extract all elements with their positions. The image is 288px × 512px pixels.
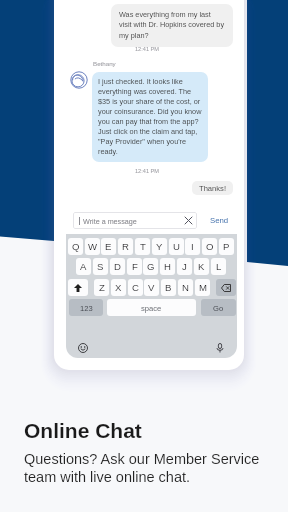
staticText: X: [115, 282, 122, 293]
staticText: T: [140, 241, 146, 252]
staticText: W: [88, 241, 98, 252]
button[interactable]: P: [219, 238, 234, 255]
button[interactable]: S: [93, 258, 108, 275]
staticText: O: [206, 241, 214, 252]
staticText: Go: [213, 304, 224, 312]
staticText: space: [141, 304, 162, 312]
staticText: Thanks!: [199, 184, 227, 192]
button[interactable]: Q: [68, 238, 83, 255]
button[interactable]: H: [160, 258, 175, 275]
staticText: Z: [99, 282, 105, 293]
staticText: I just checked. It looks like everything…: [98, 77, 202, 156]
button[interactable]: R: [118, 238, 133, 255]
staticText: A: [80, 261, 87, 272]
button[interactable]: Emoji keyboard: [76, 341, 90, 355]
button[interactable]: Z: [94, 279, 109, 296]
button[interactable]: Y: [152, 238, 167, 255]
button[interactable]: Backspace: [216, 279, 236, 296]
staticText: 123: [80, 304, 93, 312]
staticText: Bethany: [93, 60, 116, 67]
button[interactable]: Clear message: [180, 212, 197, 229]
staticText: B: [165, 282, 172, 293]
button[interactable]: U: [169, 238, 184, 255]
button[interactable]: Was everything from my last visit with D…: [111, 4, 233, 47]
staticText: K: [198, 261, 205, 272]
staticText: L: [216, 261, 222, 272]
staticText: 12:41 PM: [135, 168, 159, 174]
button[interactable]: Voice input: [213, 341, 227, 355]
button[interactable]: Go: [201, 299, 236, 316]
button[interactable]: W: [85, 238, 100, 255]
staticText: Online Chat: [24, 419, 142, 442]
staticText: Q: [72, 241, 80, 252]
staticText: R: [122, 241, 129, 252]
button[interactable]: M: [195, 279, 210, 296]
staticText: H: [164, 261, 171, 272]
button[interactable]: T: [135, 238, 150, 255]
staticText: Y: [156, 241, 163, 252]
staticText: D: [114, 261, 121, 272]
staticText: I: [191, 241, 194, 252]
button[interactable]: X: [111, 279, 126, 296]
button[interactable]: I just checked. It looks like everything…: [92, 72, 208, 162]
button[interactable]: B: [161, 279, 176, 296]
button[interactable]: A: [76, 258, 91, 275]
button[interactable]: L: [211, 258, 226, 275]
staticText: S: [97, 261, 104, 272]
button[interactable]: O: [202, 238, 217, 255]
staticText: 12:41 PM: [135, 46, 159, 52]
button[interactable]: N: [178, 279, 193, 296]
staticText: Questions? Ask our Member Service team w…: [24, 451, 260, 485]
button[interactable]: E: [101, 238, 116, 255]
button[interactable]: Shift: [68, 279, 88, 296]
button[interactable]: D: [110, 258, 125, 275]
staticText: Send: [210, 216, 229, 225]
button[interactable]: G: [143, 258, 158, 275]
staticText: E: [105, 241, 112, 252]
staticText: M: [199, 282, 207, 293]
staticText: C: [132, 282, 139, 293]
button[interactable]: V: [144, 279, 159, 296]
button[interactable]: I: [185, 238, 200, 255]
button[interactable]: Send: [208, 212, 231, 229]
staticText: U: [173, 241, 180, 252]
button[interactable]: Write a message: [73, 212, 197, 229]
button[interactable]: 123: [69, 299, 103, 316]
button[interactable]: F: [127, 258, 142, 275]
staticText: J: [182, 261, 187, 272]
staticText: F: [132, 261, 138, 272]
button[interactable]: space: [107, 299, 196, 316]
staticText: Was everything from my last visit with D…: [119, 10, 225, 40]
staticText: V: [148, 282, 155, 293]
staticText: N: [182, 282, 189, 293]
staticText: P: [223, 241, 230, 252]
staticText: G: [147, 261, 155, 272]
button[interactable]: K: [194, 258, 209, 275]
staticText: Write a message: [83, 217, 137, 225]
button[interactable]: Thanks!: [192, 181, 233, 195]
button[interactable]: C: [128, 279, 143, 296]
button[interactable]: J: [177, 258, 192, 275]
